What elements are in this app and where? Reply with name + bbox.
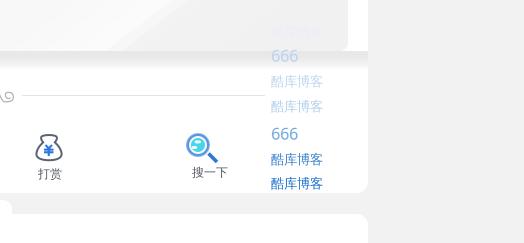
staticText: 搜一下 [192, 165, 228, 180]
button[interactable]: 酷库博客 [271, 22, 357, 43]
button[interactable]: 酷库博客 [271, 71, 357, 92]
button[interactable]: 打赏 [23, 134, 77, 182]
staticText: 打赏 [38, 167, 62, 181]
staticText: 666 [271, 123, 298, 144]
staticText: 666 [271, 45, 298, 66]
staticText: 酷库博客 [271, 151, 323, 168]
button[interactable]: 酷库博客 [271, 96, 357, 117]
button[interactable]: 酷库博客 [271, 149, 357, 170]
button[interactable]: 666 [271, 45, 357, 66]
button[interactable]: 酷库博客 [271, 173, 357, 194]
button[interactable]: 666 [271, 123, 357, 144]
staticText: 酷库博客 [271, 98, 323, 115]
button[interactable]: 搜一下 [186, 133, 246, 181]
staticText: 酷库博客 [271, 175, 323, 192]
staticText: 酷库博客 [271, 73, 323, 90]
